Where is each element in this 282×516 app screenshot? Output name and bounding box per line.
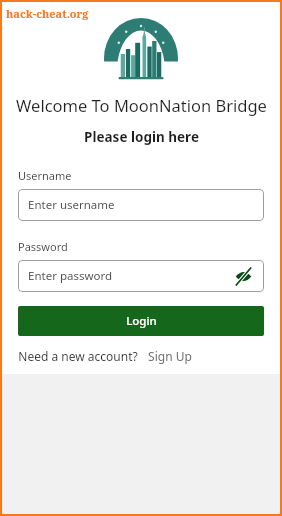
- button[interactable]: Enter username: [18, 189, 264, 221]
- button[interactable]: Sign Up: [148, 348, 192, 364]
- staticText: Need a new account?: [18, 348, 138, 364]
- staticText: Enter password: [28, 268, 113, 284]
- staticText: Password: [18, 239, 264, 254]
- button[interactable]: Login: [18, 306, 264, 336]
- staticText: Login: [126, 313, 157, 329]
- staticText: Sign Up: [148, 348, 192, 364]
- staticText: Welcome To MoonNation Bridge: [16, 94, 267, 116]
- button[interactable]: Toggle password visibility: [232, 265, 254, 287]
- staticText: Enter username: [28, 197, 115, 213]
- button[interactable]: Enter password: [18, 260, 264, 292]
- staticText: hack-cheat.org: [6, 6, 89, 21]
- staticText: Username: [18, 168, 264, 183]
- staticText: Please login here: [84, 128, 199, 146]
